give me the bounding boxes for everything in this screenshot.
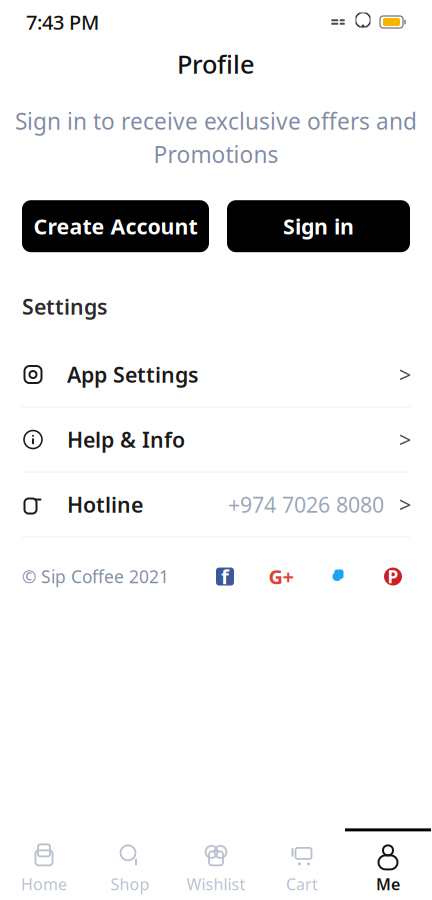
staticText: P bbox=[387, 565, 398, 588]
staticText: > bbox=[399, 425, 411, 454]
button[interactable]: Create Account bbox=[22, 200, 209, 252]
staticText: App Settings bbox=[67, 360, 199, 389]
staticText: G+ bbox=[268, 563, 293, 590]
staticText: Settings bbox=[22, 292, 108, 320]
button[interactable]: Hotline bbox=[0, 472, 432, 536]
staticText: Help & Info bbox=[67, 425, 185, 454]
button[interactable]: Facebook bbox=[208, 559, 242, 593]
button[interactable]: Me bbox=[345, 831, 431, 900]
staticText: Cart bbox=[286, 873, 318, 895]
button[interactable]: Help & Info bbox=[0, 407, 432, 471]
staticText: © Sip Coffee 2021 bbox=[22, 565, 169, 588]
staticText: Promotions bbox=[153, 139, 278, 169]
staticText: f bbox=[221, 563, 229, 590]
staticText: Sign in to receive exclusive offers and bbox=[15, 106, 417, 136]
staticText: > bbox=[399, 490, 411, 519]
staticText: 7:43 PM bbox=[26, 9, 99, 35]
staticText: Shop bbox=[110, 873, 149, 895]
staticText: Sign in bbox=[283, 212, 354, 240]
staticText: Hotline bbox=[67, 490, 143, 519]
button[interactable]: Sign in bbox=[227, 200, 410, 252]
staticText: Wishlist bbox=[186, 873, 245, 895]
staticText: Create Account bbox=[33, 212, 197, 240]
staticText: +974 7026 8080 bbox=[228, 490, 384, 519]
button[interactable]: App Settings bbox=[0, 342, 432, 406]
button[interactable]: Google Plus bbox=[264, 559, 298, 593]
staticText: > bbox=[399, 360, 411, 389]
staticText: Home bbox=[21, 873, 67, 895]
staticText: Me bbox=[376, 873, 400, 895]
button[interactable]: Wishlist bbox=[173, 831, 259, 900]
staticText: Profile bbox=[177, 47, 255, 81]
button[interactable]: Pinterest bbox=[376, 559, 410, 593]
button[interactable]: Home bbox=[1, 831, 87, 900]
button[interactable]: Twitter bbox=[320, 559, 354, 593]
button[interactable]: Cart bbox=[259, 831, 345, 900]
button[interactable]: Shop bbox=[87, 831, 173, 900]
